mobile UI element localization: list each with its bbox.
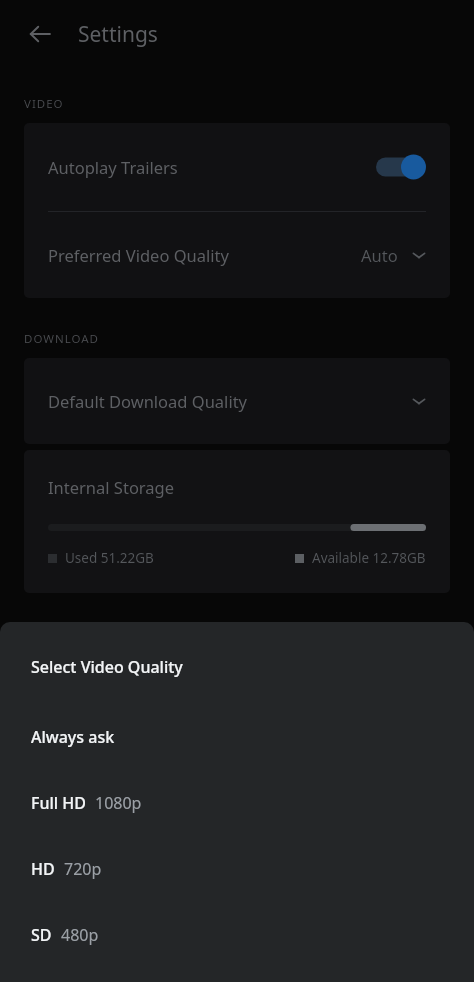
staticText: 480p [61,924,99,946]
staticText: Available 12.78GB [312,549,426,567]
staticText: DOWNLOAD [24,331,99,347]
staticText: 720p [64,858,102,880]
staticText: HD [31,858,55,880]
button[interactable]: HD [0,836,474,902]
button[interactable]: Autoplay Trailers [24,123,450,211]
staticText: 1080p [95,792,142,814]
staticText: Select Video Quality [31,656,183,678]
staticText: Used 51.22GB [65,549,154,567]
button[interactable]: Default Download Quality [24,358,450,444]
staticText: Autoplay Trailers [48,156,178,178]
staticText: Default Download Quality [48,390,248,412]
staticText: Full HD [31,792,86,814]
staticText: Always ask [31,726,115,748]
staticText: Preferred Video Quality [48,244,229,266]
button[interactable]: Always ask [0,704,474,770]
button[interactable]: Preferred Video Quality [24,212,450,298]
staticText: Internal Storage [48,476,175,498]
staticText: Settings [78,20,158,49]
button[interactable]: Back [18,12,62,56]
staticText: SD [31,924,52,946]
button[interactable]: Internal Storage [24,450,450,593]
button[interactable]: SD [0,902,474,968]
staticText: Auto [361,244,398,266]
button[interactable]: Full HD [0,770,474,836]
staticText: VIDEO [24,96,64,112]
